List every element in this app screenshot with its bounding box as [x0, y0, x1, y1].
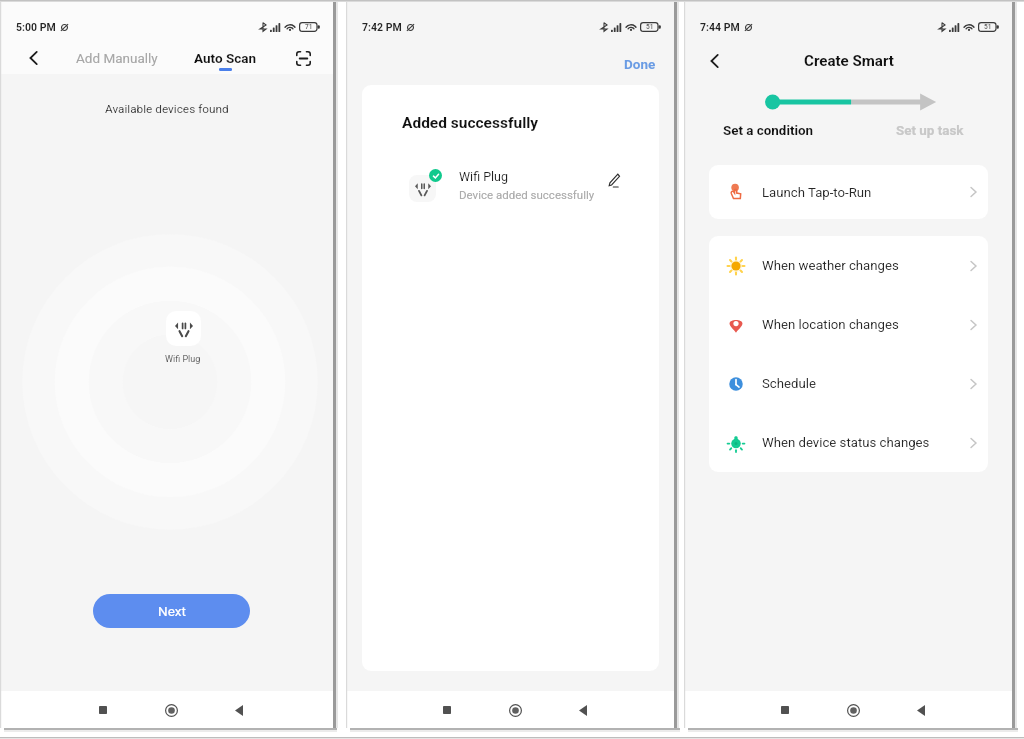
button[interactable]: Back: [701, 48, 727, 74]
staticText: Done: [624, 56, 656, 72]
button[interactable]: Recents: [86, 693, 120, 727]
staticText: When location changes: [762, 317, 899, 332]
staticText: When weather changes: [762, 258, 899, 273]
staticText: Device added successfully: [459, 188, 595, 201]
staticText: 7:44 PM: [700, 21, 740, 33]
staticText: Next: [158, 603, 186, 619]
staticText: Add Manually: [76, 50, 158, 66]
staticText: Wifi Plug: [459, 169, 508, 184]
button[interactable]: [166, 311, 201, 346]
staticText: 7:42 PM: [362, 21, 402, 33]
button[interactable]: When location changes: [709, 295, 988, 354]
staticText: Schedule: [762, 376, 816, 391]
button[interactable]: When device status changes: [709, 413, 988, 472]
button[interactable]: Next: [93, 594, 250, 628]
staticText: Wifi Plug: [165, 354, 201, 365]
button[interactable]: Home: [836, 693, 870, 727]
button[interactable]: Back: [904, 693, 938, 727]
button[interactable]: Schedule: [709, 354, 988, 413]
staticText: Set a condition: [723, 123, 814, 139]
staticText: 5:00 PM: [16, 21, 56, 33]
button[interactable]: Wifi Plug: [409, 168, 625, 202]
staticText: Launch Tap-to-Run: [762, 185, 872, 200]
button[interactable]: Done: [618, 52, 662, 76]
staticText: When device status changes: [762, 435, 930, 450]
button[interactable]: Scan QR code: [290, 45, 316, 71]
staticText: Available devices found: [105, 102, 229, 116]
button[interactable]: Home: [154, 693, 188, 727]
button[interactable]: Back: [566, 693, 600, 727]
staticText: 71: [305, 23, 313, 31]
button[interactable]: Add Manually: [64, 42, 170, 74]
button[interactable]: Recents: [768, 693, 802, 727]
button[interactable]: When weather changes: [709, 236, 988, 295]
staticText: Auto Scan: [194, 50, 257, 66]
button[interactable]: Launch Tap-to-Run: [709, 165, 988, 219]
button[interactable]: Back: [222, 693, 256, 727]
staticText: 51: [984, 23, 992, 31]
staticText: Added successfully: [402, 114, 539, 132]
button[interactable]: Auto Scan: [184, 45, 267, 71]
button[interactable]: Recents: [430, 693, 464, 727]
button[interactable]: Rename device: [603, 169, 625, 191]
staticText: Set up task: [896, 123, 964, 139]
button[interactable]: Back: [19, 44, 47, 72]
staticText: 51: [646, 23, 654, 31]
staticText: Create Smart: [804, 52, 894, 70]
button[interactable]: Home: [498, 693, 532, 727]
